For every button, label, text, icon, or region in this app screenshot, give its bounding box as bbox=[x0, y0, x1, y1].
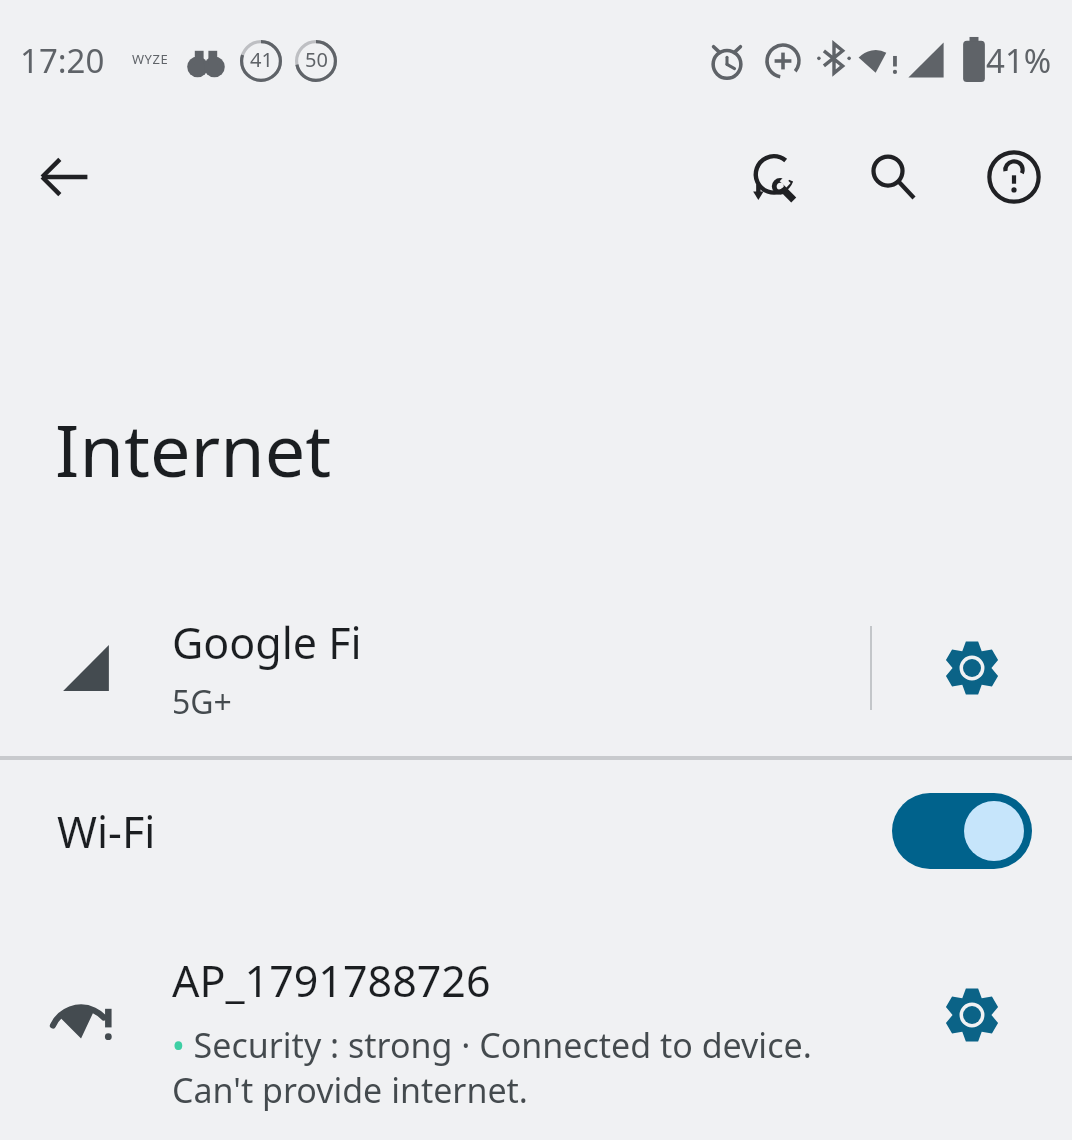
staticText: • Security : strong · Connected to devic… bbox=[172, 1022, 872, 1112]
button[interactable]: Back bbox=[24, 137, 104, 217]
staticText: 5G+ bbox=[172, 680, 232, 724]
button[interactable]: Reset and troubleshoot bbox=[735, 137, 815, 217]
staticText: Google Fi bbox=[172, 613, 362, 672]
button[interactable]: AP_1791788726 bbox=[0, 925, 1072, 1140]
button[interactable]: Wi-Fi toggle bbox=[892, 793, 1032, 869]
staticText: 17:20 bbox=[20, 38, 105, 83]
staticText: 50 bbox=[305, 46, 328, 73]
staticText: Wi-Fi bbox=[57, 802, 156, 861]
staticText: AP_1791788726 bbox=[172, 951, 491, 1010]
button[interactable]: Network settings bbox=[872, 925, 1072, 1105]
staticText: 41 bbox=[250, 46, 273, 73]
button[interactable]: Search bbox=[853, 137, 933, 217]
staticText: Internet bbox=[55, 400, 332, 498]
button[interactable]: Mobile network settings bbox=[872, 580, 1072, 756]
button[interactable]: Google Fi bbox=[0, 580, 1072, 756]
staticText: 41% bbox=[986, 38, 1052, 83]
staticText: WYZE bbox=[132, 50, 169, 68]
button[interactable]: Wi-Fi bbox=[0, 760, 1072, 902]
button[interactable]: Help bbox=[974, 137, 1054, 217]
